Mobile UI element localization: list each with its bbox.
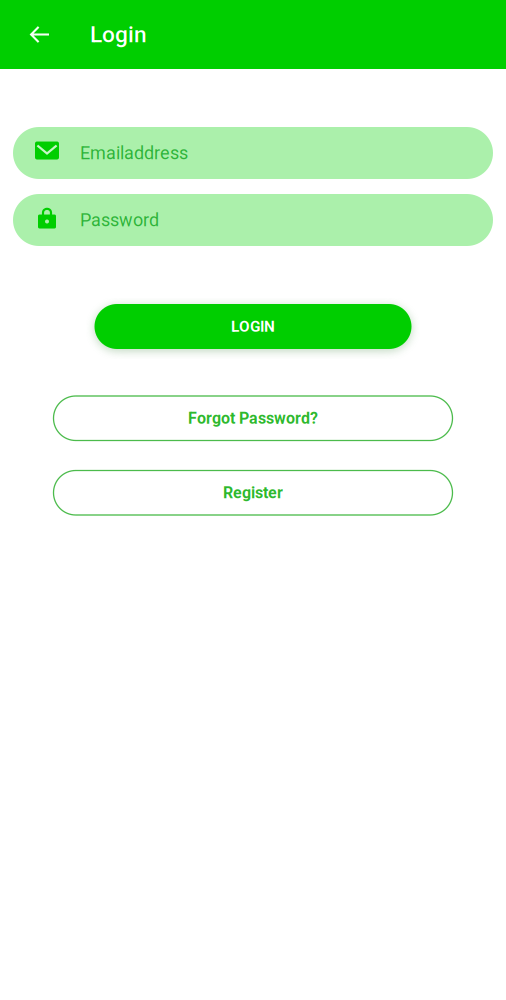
staticText: Forgot Password? — [188, 409, 318, 428]
button[interactable]: Register — [53, 470, 452, 515]
staticText: LOGIN — [231, 317, 275, 335]
button[interactable]: Password — [13, 194, 493, 246]
button[interactable]: Forgot Password? — [53, 396, 452, 440]
button[interactable]: Back — [0, 0, 90, 69]
staticText: Register — [223, 483, 283, 502]
staticText: Emailaddress — [80, 142, 188, 164]
staticText: Login — [90, 21, 147, 48]
button[interactable]: Emailaddress — [13, 127, 493, 179]
staticText: Password — [80, 209, 159, 231]
button[interactable]: LOGIN — [94, 304, 411, 349]
